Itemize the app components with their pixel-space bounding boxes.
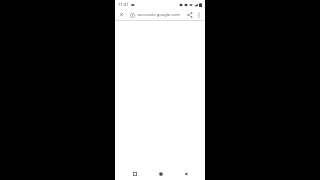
button[interactable]: Close (117, 10, 126, 19)
button[interactable]: Share (185, 10, 194, 19)
button[interactable]: Home (155, 168, 166, 179)
button[interactable]: More options (195, 11, 203, 19)
button[interactable]: Site information (128, 11, 136, 19)
button[interactable]: Recent apps (129, 168, 140, 179)
staticText: 11:41 (118, 2, 129, 7)
staticText: accounts.google.com (138, 12, 180, 18)
button[interactable]: Back (180, 168, 191, 179)
button[interactable]: accounts.google.com (138, 9, 184, 20)
